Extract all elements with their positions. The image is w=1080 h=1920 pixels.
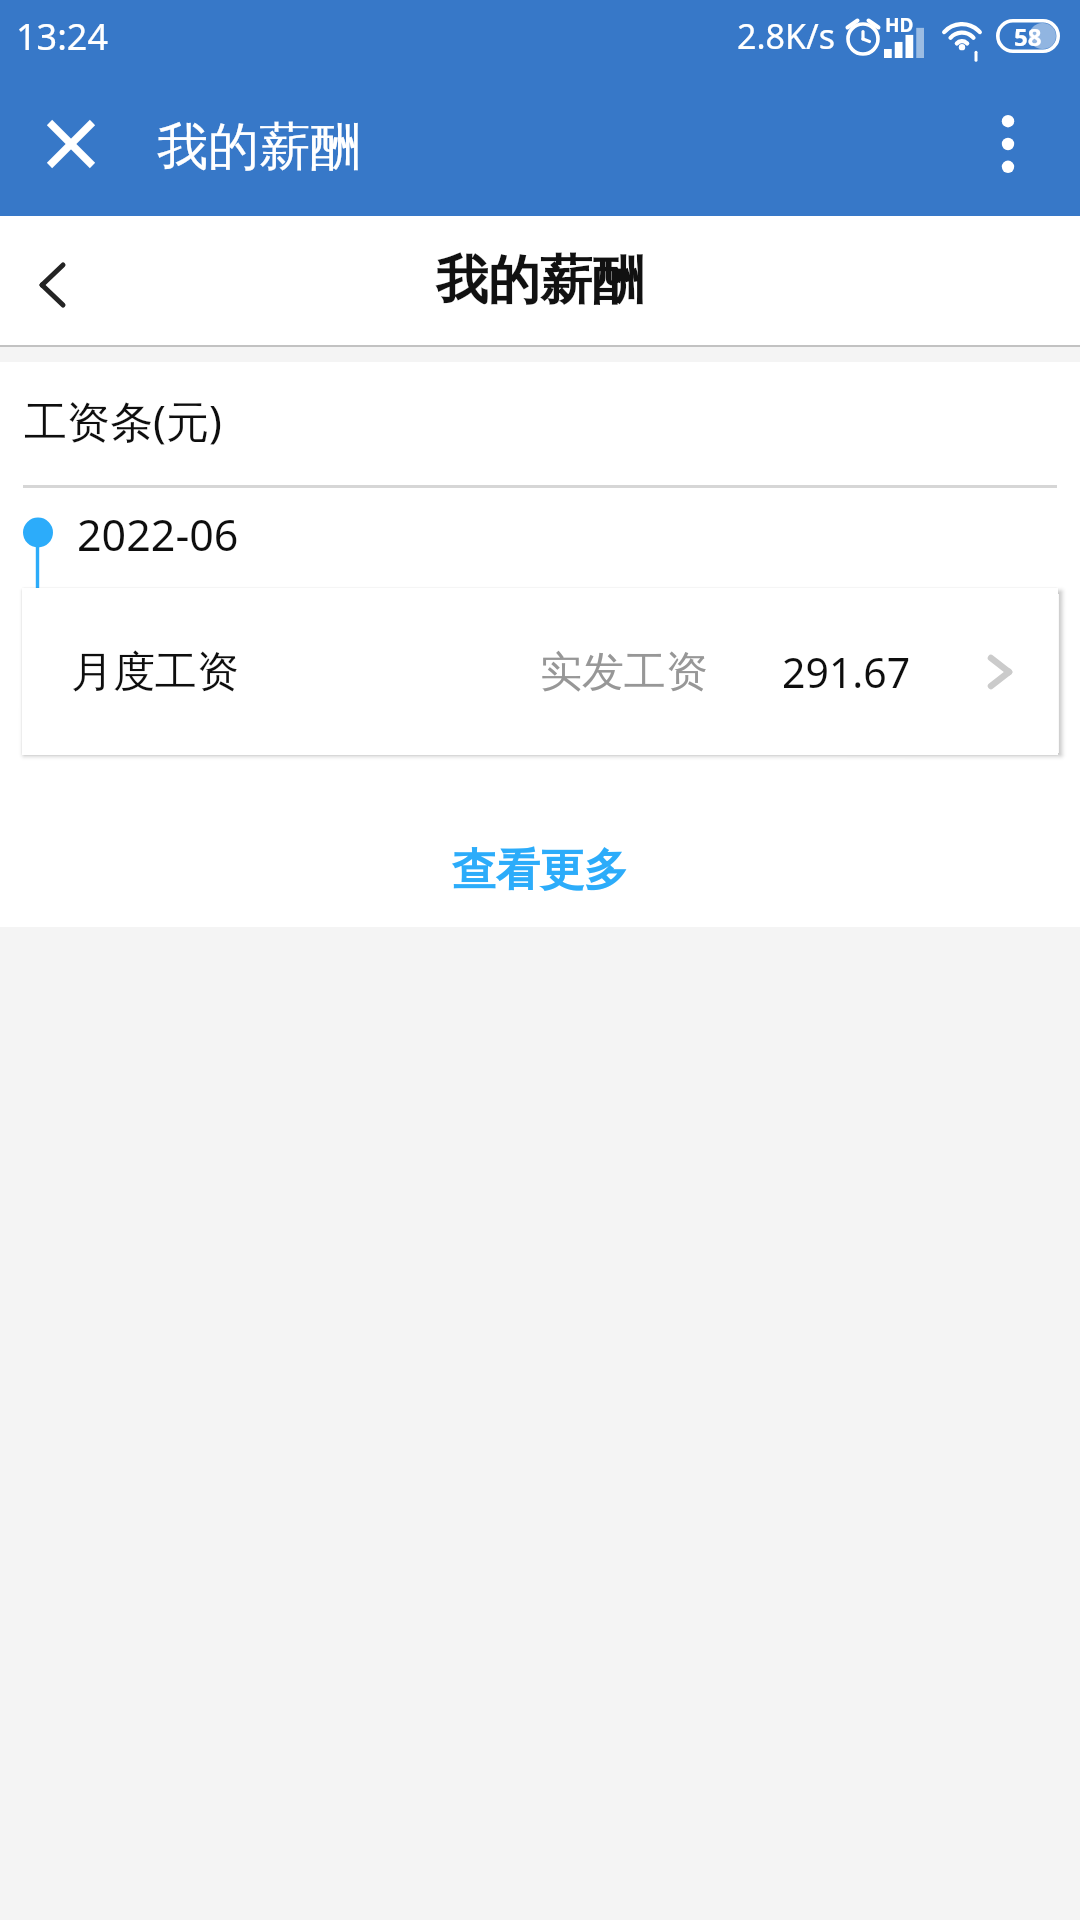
button[interactable]: More options (964, 100, 1052, 188)
staticText: 291.67 (782, 644, 911, 700)
button[interactable]: 查看更多 (432, 804, 648, 879)
button[interactable]: Back (4, 237, 100, 333)
staticText: 58 (1014, 20, 1042, 53)
staticText: 实发工资 (540, 646, 708, 699)
staticText: 2.8K/s (737, 13, 835, 59)
button[interactable]: 月度工资 (22, 588, 1058, 755)
button[interactable]: Close (27, 100, 115, 188)
staticText: 工资条(元) (24, 391, 222, 450)
staticText: 我的薪酬 (157, 115, 361, 179)
staticText: 2022-06 (77, 505, 239, 564)
staticText: HD (885, 12, 914, 38)
staticText: 我的薪酬 (436, 248, 644, 314)
staticText: 月度工资 (71, 646, 239, 699)
staticText: 13:24 (16, 12, 109, 61)
